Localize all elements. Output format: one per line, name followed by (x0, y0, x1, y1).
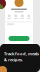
button[interactable]: Get started (5, 36, 33, 41)
staticText: Track food, meals (4, 51, 39, 56)
staticText: & recipes. (4, 57, 23, 62)
